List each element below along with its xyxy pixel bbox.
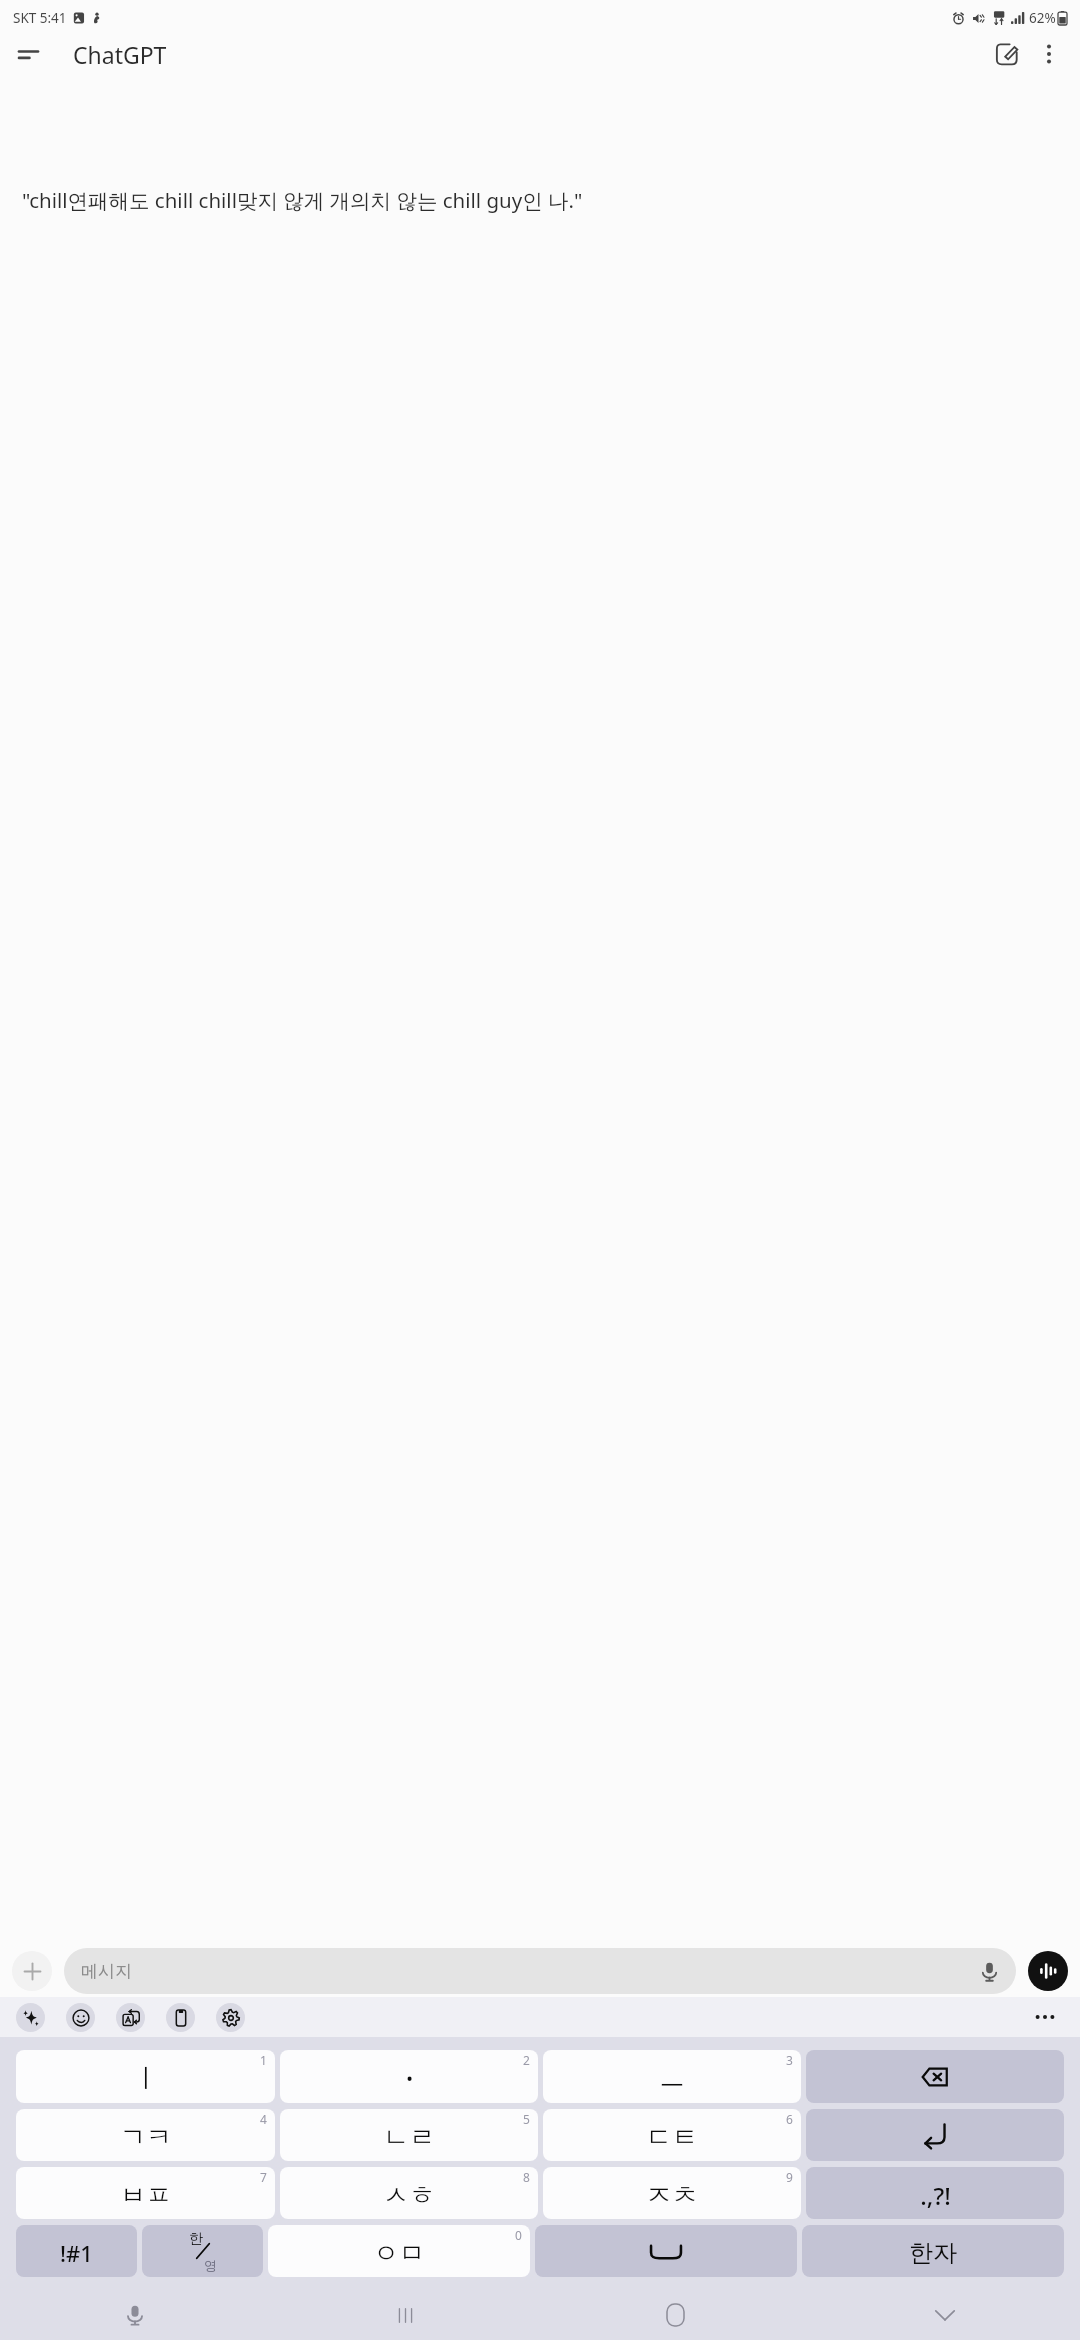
- staticText: 한: [189, 2230, 203, 2248]
- staticText: 5: [523, 2111, 530, 2127]
- staticText: 영: [204, 2257, 217, 2273]
- button[interactable]: Clipboard: [166, 2003, 195, 2032]
- button[interactable]: Enter: [806, 2109, 1064, 2161]
- button[interactable]: Home: [540, 2290, 810, 2340]
- staticText: ㅂㅍ: [120, 2179, 172, 2212]
- staticText: ㄷㅌ: [646, 2121, 698, 2154]
- staticText: "chill연패해도 chill chill맞지 않게 개의치 않는 chill…: [22, 186, 1050, 214]
- button[interactable]: 1: [16, 2050, 275, 2103]
- button[interactable]: New chat: [986, 35, 1028, 73]
- button[interactable]: Translate: [116, 2003, 145, 2032]
- staticText: 9: [786, 2169, 793, 2185]
- staticText: ㅣ: [133, 2062, 159, 2095]
- button[interactable]: 한자: [802, 2225, 1064, 2277]
- button[interactable]: !#1: [16, 2225, 137, 2277]
- staticText: 3: [786, 2052, 793, 2068]
- button[interactable]: More keyboard options: [1028, 2000, 1062, 2034]
- button[interactable]: AI suggestions: [16, 2003, 45, 2032]
- button[interactable]: Voice typing: [0, 2290, 270, 2340]
- button[interactable]: .,?!: [806, 2167, 1064, 2219]
- staticText: 62%: [1029, 9, 1056, 27]
- button[interactable]: 6: [543, 2109, 801, 2161]
- button[interactable]: 2: [280, 2050, 538, 2103]
- staticText: 0: [515, 2227, 522, 2243]
- button[interactable]: 메시지: [64, 1948, 1016, 1994]
- button[interactable]: 5: [280, 2109, 538, 2161]
- staticText: ㅡ: [659, 2062, 685, 2095]
- staticText: 6: [786, 2111, 793, 2127]
- button[interactable]: 0: [268, 2225, 530, 2277]
- button[interactable]: 7: [16, 2167, 275, 2219]
- staticText: 1: [260, 2052, 267, 2068]
- staticText: ㄴㄹ: [383, 2121, 435, 2154]
- button[interactable]: Voice input: [974, 1956, 1004, 1986]
- button[interactable]: 3: [543, 2050, 801, 2103]
- button[interactable]: Recents: [270, 2290, 540, 2340]
- button[interactable]: Emoji: [66, 2003, 95, 2032]
- staticText: SKT 5:41: [13, 9, 67, 27]
- staticText: ·: [405, 2058, 414, 2099]
- staticText: 한자: [909, 2238, 957, 2268]
- staticText: 7: [260, 2169, 267, 2185]
- staticText: ChatGPT: [73, 39, 167, 70]
- button[interactable]: 4: [16, 2109, 275, 2161]
- button[interactable]: Keyboard settings: [216, 2003, 245, 2032]
- staticText: ㅈㅊ: [646, 2179, 698, 2212]
- staticText: .,?!: [920, 2179, 951, 2212]
- staticText: 4: [260, 2111, 267, 2127]
- staticText: 8: [523, 2169, 530, 2185]
- button[interactable]: Backspace: [806, 2050, 1064, 2103]
- staticText: 메시지: [81, 1961, 974, 1982]
- staticText: 2: [523, 2052, 530, 2068]
- staticText: ㅇㅁ: [373, 2237, 425, 2270]
- button[interactable]: Menu: [8, 35, 48, 73]
- staticText: ㅅㅎ: [383, 2179, 435, 2212]
- button[interactable]: Voice mode: [1028, 1951, 1068, 1991]
- staticText: !#1: [60, 2238, 93, 2268]
- button[interactable]: More options: [1028, 35, 1070, 73]
- button[interactable]: 8: [280, 2167, 538, 2219]
- button[interactable]: Space: [535, 2225, 797, 2277]
- button[interactable]: Add attachment: [12, 1951, 52, 1991]
- button[interactable]: Korean English toggle: [142, 2225, 263, 2277]
- button[interactable]: 9: [543, 2167, 801, 2219]
- button[interactable]: Hide keyboard: [810, 2290, 1080, 2340]
- staticText: ㄱㅋ: [120, 2121, 172, 2154]
